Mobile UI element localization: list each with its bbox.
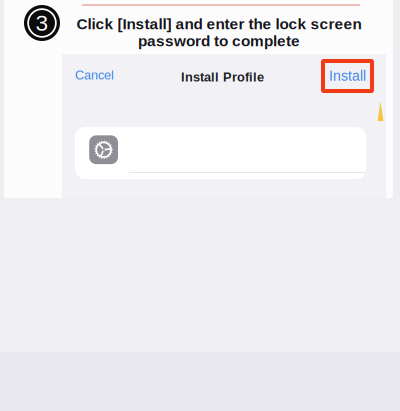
- staticText: Install Profile: [181, 70, 264, 84]
- staticText: Click [Install] and enter the lock scree…: [76, 15, 361, 32]
- button[interactable]: Install: [323, 61, 372, 91]
- staticText: 3: [35, 10, 48, 36]
- button[interactable]: Cancel: [75, 68, 115, 82]
- staticText: Cancel: [75, 68, 114, 82]
- staticText: password to complete: [138, 32, 300, 49]
- staticText: Install: [329, 68, 366, 84]
